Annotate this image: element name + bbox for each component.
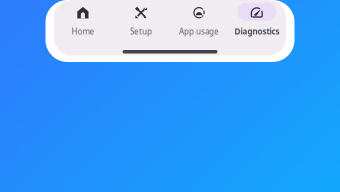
staticText: App usage <box>179 26 219 37</box>
staticText: Home <box>71 26 94 37</box>
button[interactable]: App usage <box>170 0 228 36</box>
button[interactable]: Diagnostics <box>228 0 286 36</box>
button[interactable]: Home <box>54 0 112 36</box>
staticText: Setup <box>130 26 152 37</box>
button[interactable]: Setup <box>112 0 170 36</box>
staticText: Diagnostics <box>234 26 279 37</box>
